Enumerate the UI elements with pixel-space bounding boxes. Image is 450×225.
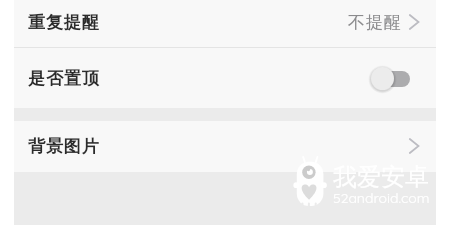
staticText: 52android.com [333, 189, 430, 207]
button[interactable]: 重复提醒 [14, 0, 436, 47]
button[interactable]: 是否置顶 [14, 48, 436, 108]
staticText: 是否置顶 [28, 68, 100, 89]
button[interactable]: 背景图片 [14, 121, 436, 172]
button[interactable]: Pin to top, off [369, 65, 410, 92]
staticText: 我爱安卓 [333, 162, 429, 192]
staticText: 背景图片 [28, 136, 100, 157]
staticText: 不提醒 [348, 12, 402, 33]
staticText: 重复提醒 [28, 12, 100, 33]
